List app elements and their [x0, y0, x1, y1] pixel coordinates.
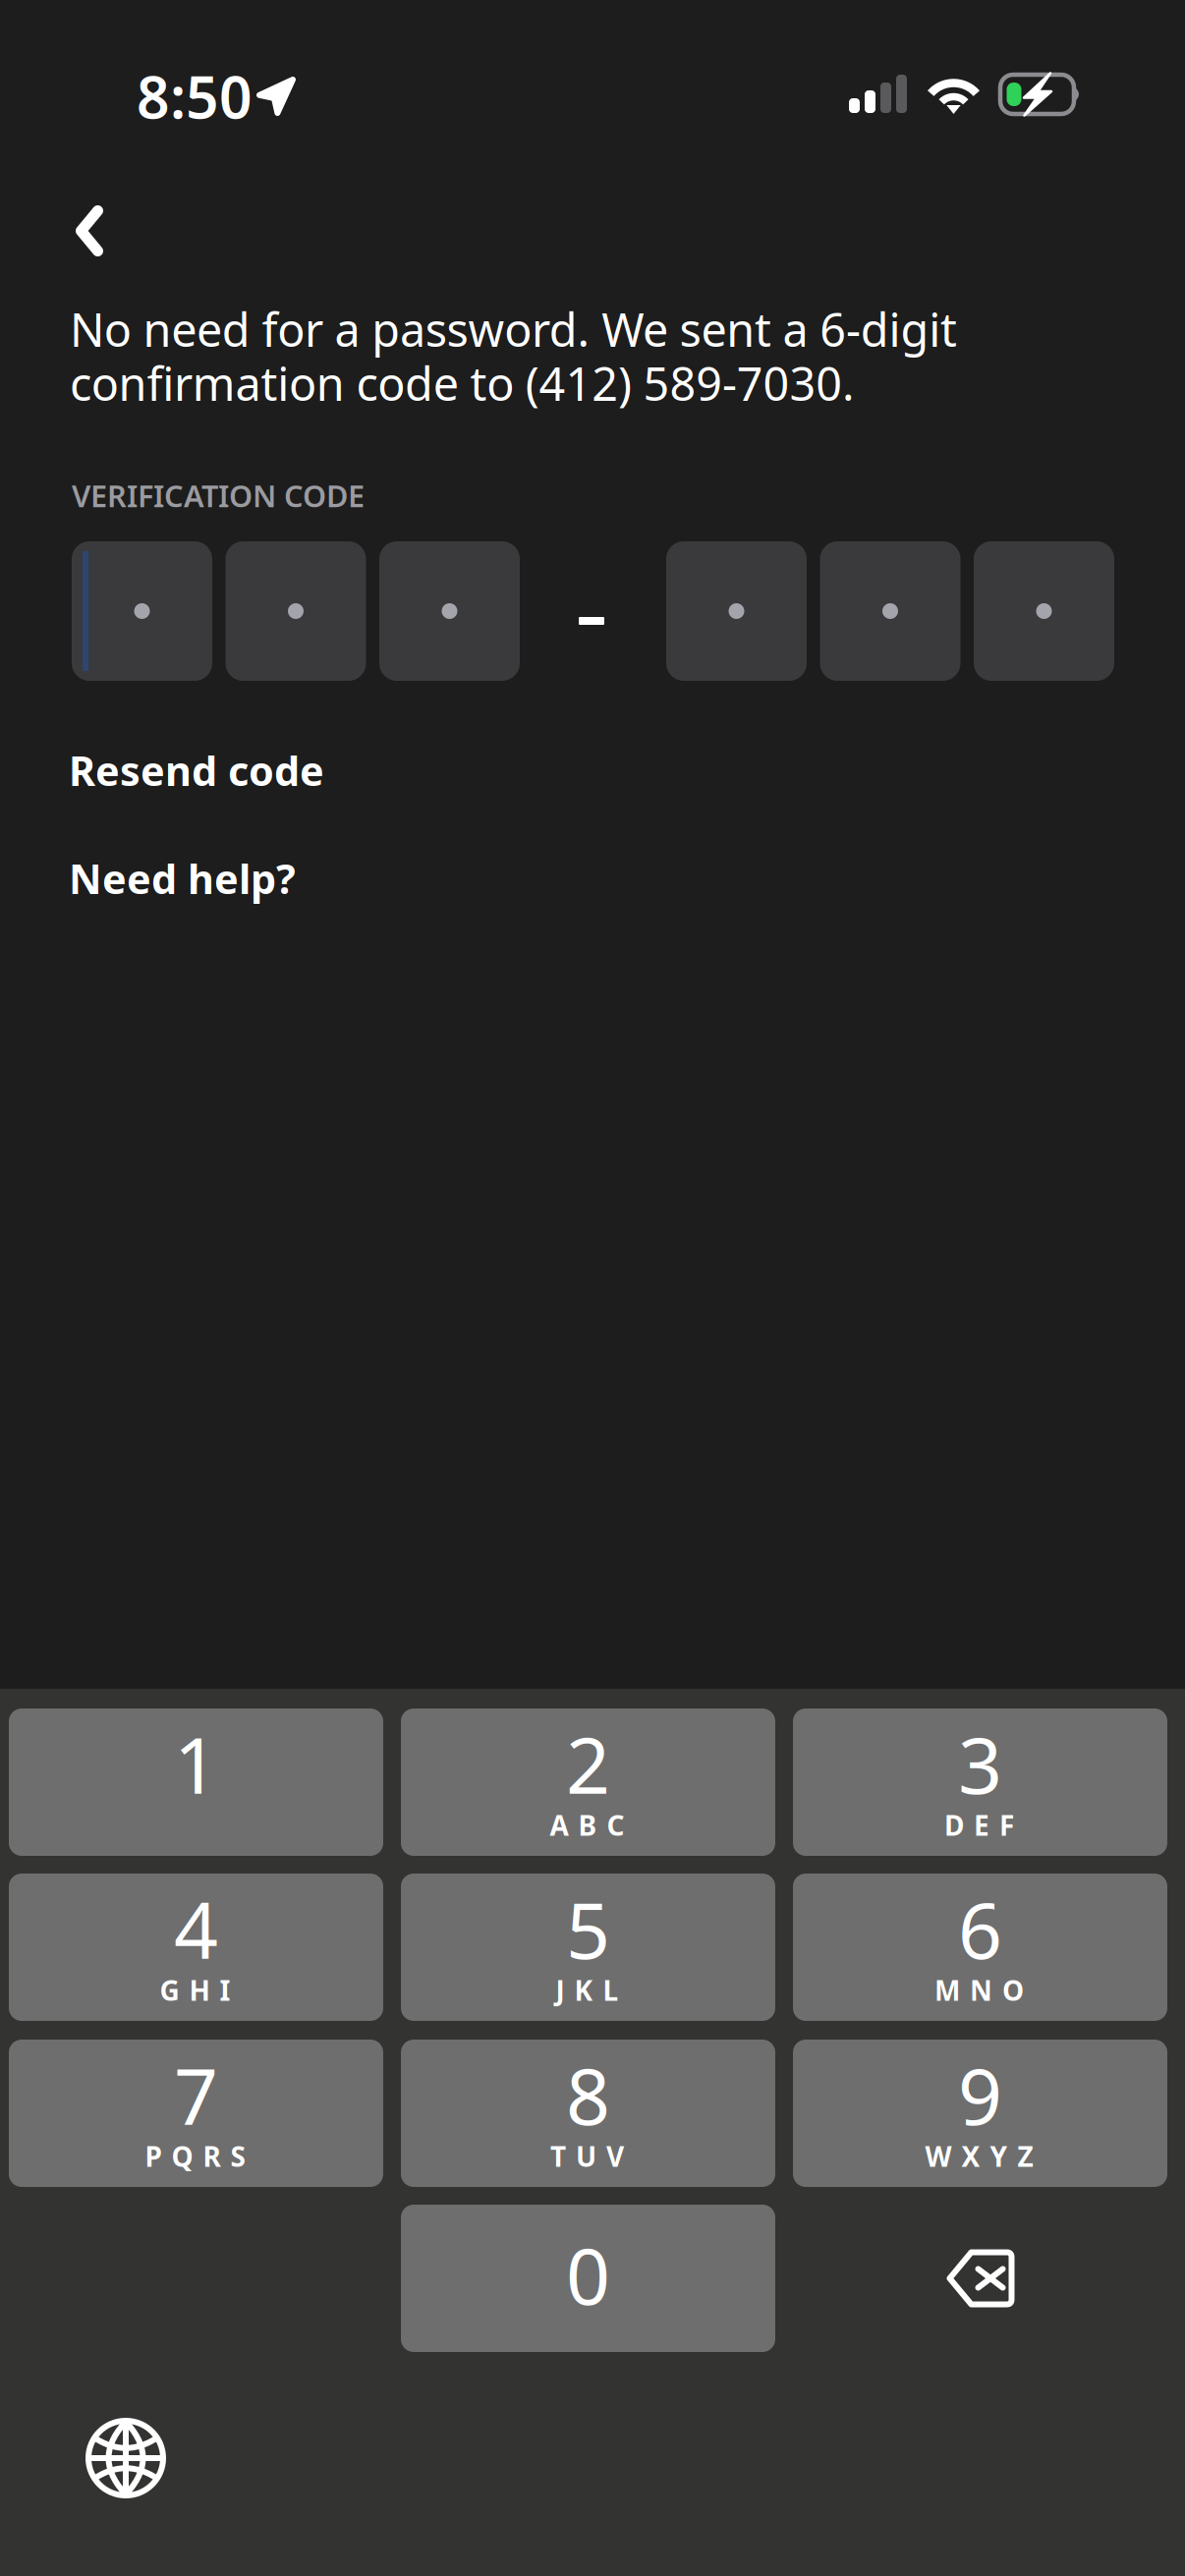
staticText: 9 [958, 2044, 1002, 2146]
button[interactable]: 3 [793, 1708, 1167, 1856]
staticText: 7 [174, 2044, 218, 2146]
button[interactable]: 5 [401, 1874, 775, 2021]
button[interactable]: 2 [401, 1708, 775, 1856]
staticText: 8:50 [137, 58, 253, 134]
staticText: DEF [944, 1807, 1014, 1843]
staticText: ABC [550, 1807, 624, 1843]
staticText: 2 [566, 1712, 610, 1815]
staticText: 5 [566, 1877, 610, 1980]
button[interactable]: Need help? [69, 841, 364, 916]
staticText: 0 [566, 2223, 610, 2326]
staticText: Need help? [69, 851, 296, 905]
staticText: WXYZ [925, 2138, 1033, 2174]
staticText: VERIFICATION CODE [72, 476, 365, 515]
button[interactable]: Back [31, 178, 147, 284]
staticText: 1 [174, 1712, 218, 1815]
staticText: 3 [958, 1712, 1002, 1815]
staticText: PQRS [145, 2138, 245, 2174]
button[interactable]: 0 [401, 2205, 775, 2352]
button[interactable]: Next keyboard [63, 2395, 189, 2521]
button[interactable]: 4 [9, 1874, 383, 2021]
button[interactable]: 7 [9, 2040, 383, 2187]
button[interactable]: Resend code [69, 733, 364, 808]
button[interactable]: 1 [9, 1708, 383, 1856]
button[interactable]: 6 [793, 1874, 1167, 2021]
button[interactable]: 8 [401, 2040, 775, 2187]
staticText: TUV [550, 2138, 624, 2174]
staticText: MNO [934, 1972, 1024, 2008]
staticText: JKL [556, 1972, 619, 2008]
button[interactable]: 9 [793, 2040, 1167, 2187]
staticText: 8 [566, 2044, 610, 2146]
staticText: GHI [160, 1972, 230, 2008]
staticText: No need for a password. We sent a 6-digi… [70, 299, 957, 414]
staticText: Resend code [69, 743, 324, 797]
button[interactable]: Delete [793, 2205, 1167, 2352]
staticText: 6 [958, 1877, 1002, 1980]
button[interactable]: Verification code [72, 541, 1114, 681]
staticText: 4 [174, 1877, 218, 1980]
